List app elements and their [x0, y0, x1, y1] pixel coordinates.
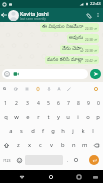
- button[interactable]: Home: [45, 171, 57, 183]
- staticText: 2: [15, 100, 18, 107]
- staticText: a: [9, 127, 13, 135]
- staticText: c: [39, 141, 42, 149]
- button[interactable]: u: [63, 110, 73, 124]
- button[interactable]: 9: [83, 96, 93, 110]
- staticText: 22:38: [85, 38, 93, 42]
- staticText: 9: [87, 100, 90, 107]
- button[interactable]: 6: [53, 96, 63, 110]
- button[interactable]: More options: [94, 11, 102, 19]
- staticText: మనం కలిసి మాట్లా: [47, 57, 84, 63]
- button[interactable]: Send: [90, 69, 101, 79]
- button[interactable]: q: [0, 110, 11, 124]
- button[interactable]: ఈ విషయం నిజమేనా: [40, 23, 99, 32]
- button[interactable]: s: [16, 124, 27, 138]
- button[interactable]: n: [68, 138, 79, 152]
- button[interactable]: d: [27, 124, 38, 138]
- button[interactable]: Stickers: [34, 85, 42, 93]
- button[interactable]: .: [63, 152, 72, 168]
- staticText: y: [57, 113, 60, 121]
- button[interactable]: Backspace: [90, 138, 103, 152]
- staticText: r: [37, 113, 40, 121]
- staticText: t: [47, 113, 50, 121]
- button[interactable]: l: [88, 124, 98, 138]
- button[interactable]: c: [35, 138, 46, 152]
- button[interactable]: m: [79, 138, 90, 152]
- button[interactable]: b: [57, 138, 68, 152]
- staticText: .: [67, 157, 69, 163]
- button[interactable]: Handwriting: [65, 85, 73, 93]
- staticText: 4: [37, 100, 40, 107]
- staticText: i: [77, 113, 79, 121]
- staticText: Kavita Joshi: [20, 10, 49, 17]
- button[interactable]: Recents: [73, 171, 85, 183]
- button[interactable]: Themes: [12, 85, 20, 93]
- button[interactable]: x: [24, 138, 35, 152]
- button[interactable]: y: [53, 110, 63, 124]
- button[interactable]: r: [33, 110, 43, 124]
- staticText: h: [61, 127, 65, 135]
- button[interactable]: p: [93, 110, 103, 124]
- staticText: 1: [4, 100, 7, 107]
- button[interactable]: e: [22, 110, 33, 124]
- button[interactable]: a: [5, 124, 16, 138]
- staticText: 6: [57, 100, 60, 107]
- button[interactable]: z: [13, 138, 24, 152]
- button[interactable]: g: [48, 124, 58, 138]
- button[interactable]: Back: [0, 11, 8, 19]
- button[interactable]: Enter: [89, 155, 99, 165]
- button[interactable]: f: [38, 124, 48, 138]
- button[interactable]: అవును: [67, 34, 99, 43]
- staticText: 7: [67, 100, 70, 107]
- staticText: o: [86, 113, 90, 121]
- button[interactable]: 0: [93, 96, 103, 110]
- button[interactable]: 5: [43, 96, 53, 110]
- button[interactable]: Emoji: [14, 152, 25, 168]
- staticText: f: [42, 127, 44, 135]
- staticText: k: [81, 127, 85, 135]
- staticText: 3: [26, 100, 29, 107]
- button[interactable]: k: [78, 124, 88, 138]
- staticText: s: [20, 127, 23, 135]
- staticText: 8: [77, 100, 80, 107]
- staticText: 22:42: [85, 59, 93, 63]
- button[interactable]: 8: [73, 96, 83, 110]
- staticText: j: [72, 127, 74, 135]
- button[interactable]: Microphone: [45, 85, 53, 93]
- button[interactable]: నేను చెప్పా: [60, 45, 99, 54]
- button[interactable]: Google search: [1, 85, 9, 93]
- button[interactable]: 3: [22, 96, 33, 110]
- button[interactable]: 7: [63, 96, 73, 110]
- button[interactable]: Kavita Joshi: [20, 10, 83, 21]
- staticText: d: [31, 127, 35, 135]
- button[interactable]: 4: [33, 96, 43, 110]
- button[interactable]: Share: [55, 85, 63, 93]
- staticText: g: [51, 127, 55, 135]
- button[interactable]: Settings: [23, 85, 31, 93]
- button[interactable]: మనం కలిసి మాట్లా: [45, 56, 99, 64]
- staticText: 5: [47, 100, 50, 107]
- button[interactable]: i: [73, 110, 83, 124]
- staticText: z: [17, 141, 20, 149]
- button[interactable]: More tools: [92, 85, 100, 93]
- button[interactable]: t: [43, 110, 53, 124]
- button[interactable]: w: [11, 110, 22, 124]
- staticText: p: [96, 113, 100, 121]
- button[interactable]: 1: [0, 96, 11, 110]
- button[interactable]: o: [83, 110, 93, 124]
- button[interactable]: 2: [11, 96, 22, 110]
- button[interactable]: v: [46, 138, 57, 152]
- staticText: ?123: [3, 158, 11, 163]
- staticText: 0: [97, 100, 100, 107]
- button[interactable]: h: [58, 124, 68, 138]
- button[interactable]: Hide keyboard: [90, 172, 100, 182]
- button[interactable]: [2, 69, 88, 79]
- staticText: 22:30: [85, 27, 93, 31]
- staticText: l: [92, 127, 94, 135]
- button[interactable]: ?123: [0, 152, 14, 168]
- button[interactable]: Attach: [83, 10, 94, 21]
- button[interactable]: Back: [16, 171, 28, 183]
- button[interactable]: Emoji picker: [72, 152, 80, 168]
- button[interactable]: Shift: [0, 138, 13, 152]
- button[interactable]: j: [68, 124, 78, 138]
